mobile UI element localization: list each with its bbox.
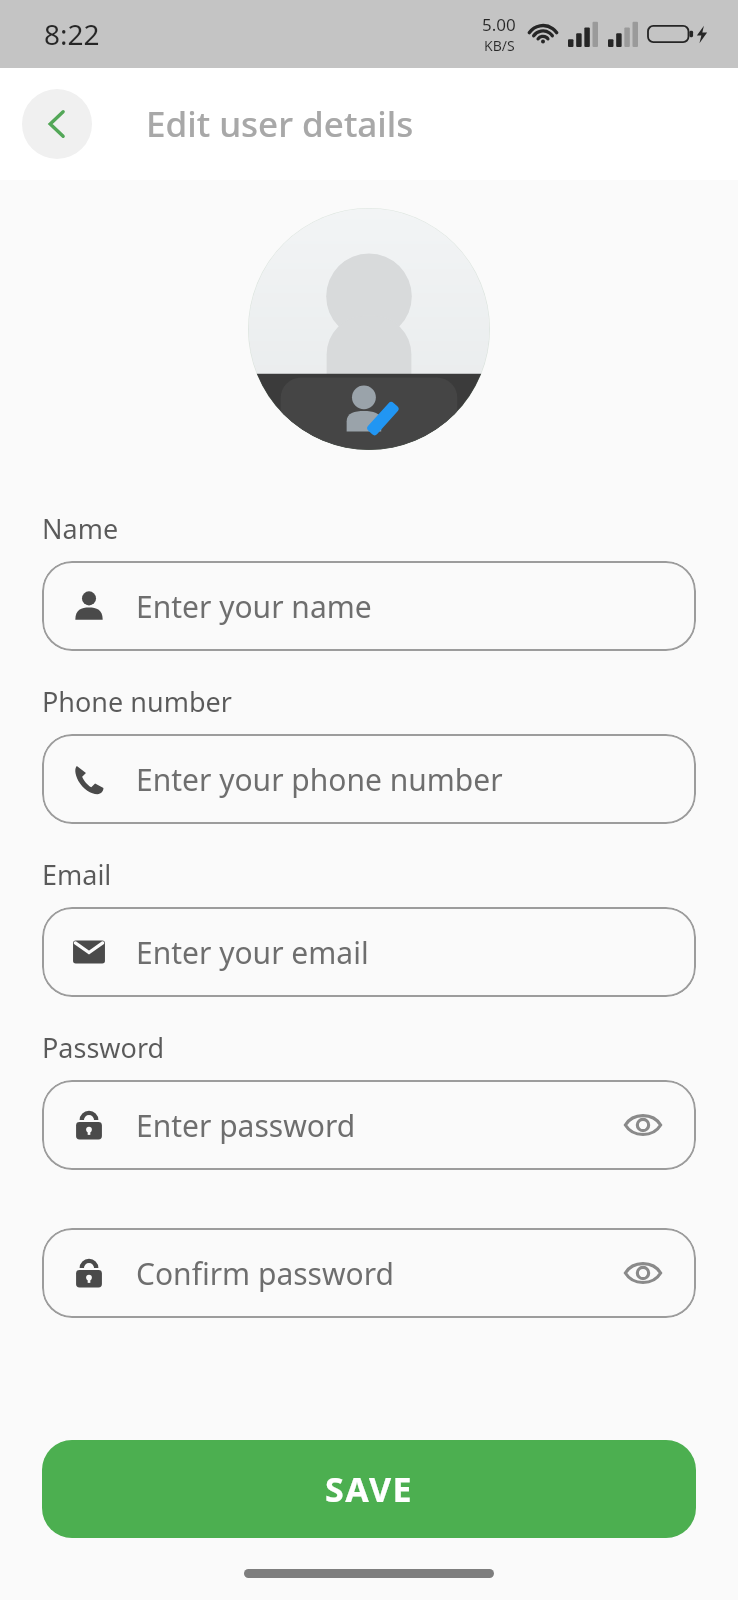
staticText: Confirm password: [136, 1253, 618, 1294]
button[interactable]: Enter your email: [42, 907, 696, 997]
button[interactable]: Show password: [618, 1100, 668, 1150]
button[interactable]: Confirm password: [42, 1228, 696, 1318]
staticText: Enter password: [136, 1105, 618, 1146]
staticText: Enter your email: [136, 932, 668, 973]
staticText: Phone number: [42, 683, 232, 720]
staticText: 5.00: [482, 13, 516, 36]
button[interactable]: Show password: [618, 1248, 668, 1298]
button[interactable]: Change profile photo: [248, 208, 490, 450]
staticText: Email: [42, 856, 112, 893]
button[interactable]: SAVE: [42, 1440, 696, 1538]
staticText: Edit user details: [146, 100, 414, 148]
staticText: Enter your name: [136, 586, 668, 627]
button[interactable]: Enter your phone number: [42, 734, 696, 824]
staticText: 8:22: [44, 15, 100, 53]
staticText: SAVE: [325, 1466, 414, 1512]
button[interactable]: Enter your name: [42, 561, 696, 651]
button[interactable]: Enter password: [42, 1080, 696, 1170]
staticText: Name: [42, 510, 119, 547]
staticText: Password: [42, 1029, 165, 1066]
staticText: KB/S: [484, 36, 515, 55]
button[interactable]: Back: [22, 89, 92, 159]
staticText: Enter your phone number: [136, 759, 668, 800]
